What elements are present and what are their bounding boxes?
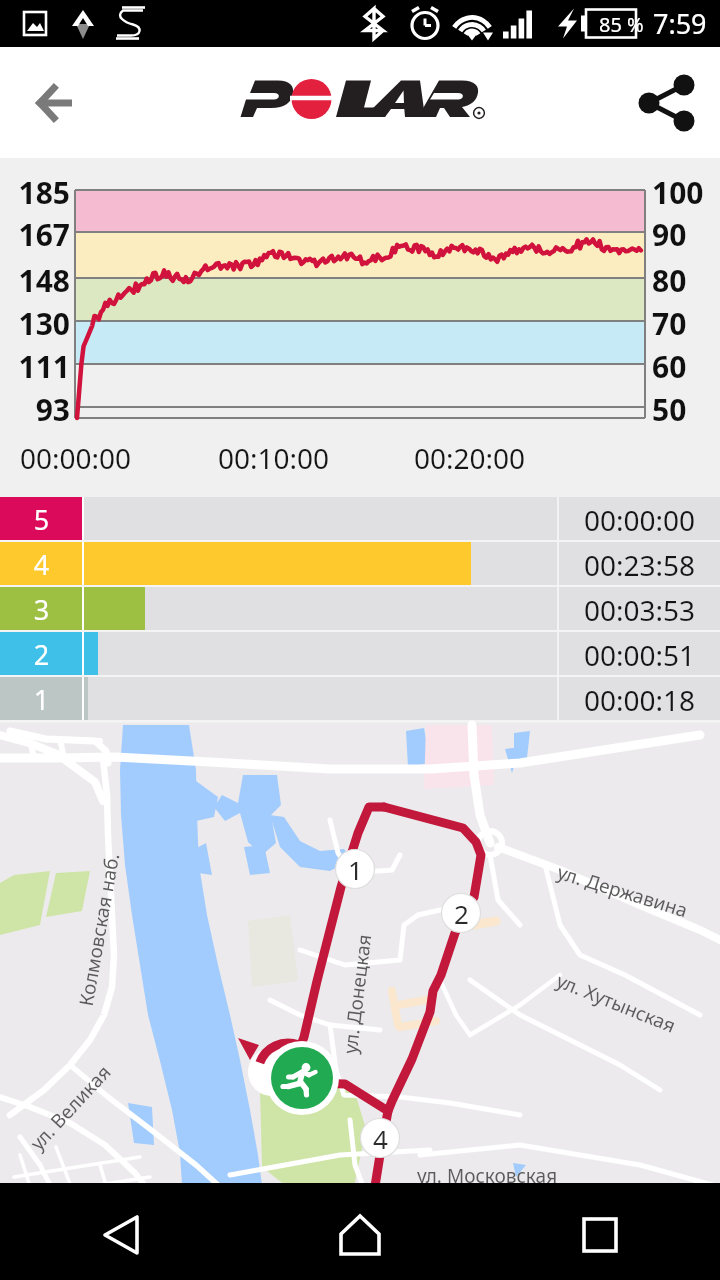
- button[interactable]: Back: [0, 1183, 240, 1280]
- staticText: 3: [0, 591, 83, 628]
- staticText: 50: [652, 389, 720, 430]
- staticText: 4: [0, 546, 83, 583]
- staticText: 111: [0, 346, 70, 387]
- button[interactable]: 5: [0, 497, 720, 542]
- staticText: 2: [0, 636, 83, 673]
- staticText: 148: [0, 260, 70, 301]
- staticText: 00:03:53: [584, 591, 696, 629]
- staticText: 90: [652, 214, 720, 255]
- staticText: 00:00:51: [584, 636, 696, 674]
- staticText: 00:23:58: [584, 546, 696, 584]
- staticText: 85 %: [599, 11, 644, 38]
- staticText: 4: [373, 1121, 388, 1156]
- staticText: 185: [0, 172, 70, 213]
- staticText: ул. Московская: [417, 1163, 558, 1189]
- staticText: 130: [0, 303, 70, 344]
- button[interactable]: 4: [0, 542, 720, 587]
- staticText: 2: [454, 896, 469, 931]
- staticText: ул. Хутынская: [553, 967, 680, 1039]
- button[interactable]: Recents: [480, 1183, 720, 1280]
- button[interactable]: 3: [0, 587, 720, 632]
- staticText: 70: [652, 303, 720, 344]
- staticText: 80: [652, 260, 720, 301]
- button[interactable]: Route map: [0, 723, 720, 1183]
- button[interactable]: 1: [0, 677, 720, 722]
- staticText: Колмовская наб.: [73, 851, 125, 1008]
- staticText: ул. Великая: [24, 1060, 116, 1156]
- staticText: 00:10:00: [218, 439, 330, 477]
- staticText: 167: [0, 214, 70, 255]
- button[interactable]: Back: [20, 68, 90, 138]
- staticText: 1: [348, 852, 363, 887]
- staticText: ул. Державина: [554, 859, 691, 923]
- staticText: 5: [0, 501, 83, 538]
- staticText: 60: [652, 346, 720, 387]
- staticText: 00:00:00: [584, 501, 696, 539]
- button[interactable]: Home: [240, 1183, 480, 1280]
- staticText: 7:59: [653, 5, 707, 42]
- staticText: ул. Донецкая: [337, 932, 377, 1055]
- staticText: 93: [0, 389, 70, 430]
- staticText: 00:00:18: [584, 681, 696, 719]
- staticText: 00:00:00: [20, 439, 132, 477]
- staticText: 1: [0, 681, 83, 718]
- button[interactable]: Share: [632, 68, 702, 138]
- staticText: 00:20:00: [414, 439, 526, 477]
- staticText: 100: [652, 172, 720, 213]
- button[interactable]: 2: [0, 632, 720, 677]
